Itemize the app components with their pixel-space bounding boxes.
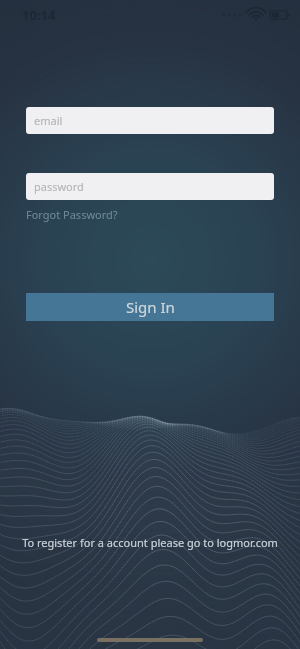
staticText: password — [34, 179, 84, 194]
button[interactable]: To register for a account please go to l… — [0, 535, 300, 550]
staticText: Sign In — [126, 297, 175, 317]
button[interactable]: Forgot Password? — [26, 205, 118, 224]
other: Home indicator — [97, 638, 203, 642]
button[interactable]: email — [26, 107, 274, 134]
button[interactable]: Sign In — [26, 293, 274, 321]
staticText: 10:14 — [22, 6, 56, 24]
button[interactable]: password — [26, 173, 274, 200]
staticText: Forgot Password? — [26, 207, 118, 222]
staticText: email — [34, 113, 63, 128]
